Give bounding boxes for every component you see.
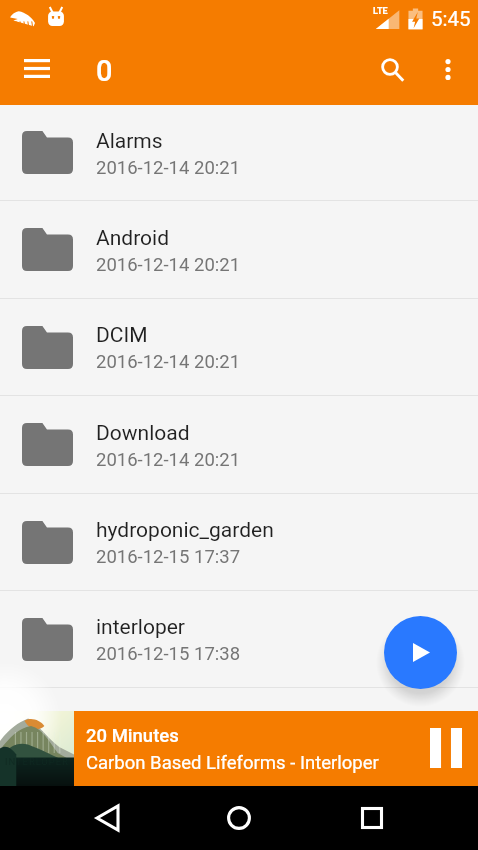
button[interactable]: Pause	[421, 723, 471, 773]
staticText: interloper	[96, 615, 185, 640]
staticText: 2016-12-14 20:21	[96, 157, 241, 179]
button[interactable]: Play	[384, 616, 457, 689]
staticText: 2016-12-15 17:37	[96, 546, 241, 568]
button[interactable]: hydroponic_garden	[0, 494, 478, 590]
staticText: 2016-12-14 20:21	[96, 351, 241, 373]
button[interactable]: Home	[215, 794, 263, 842]
staticText: Alarms	[96, 129, 163, 154]
staticText: 2016-12-15 17:38	[96, 643, 241, 665]
button[interactable]: interloper	[0, 591, 478, 687]
button[interactable]: Download	[0, 396, 478, 493]
staticText: Download	[96, 421, 190, 446]
staticText: 5:45	[431, 7, 471, 31]
button[interactable]: Android	[0, 201, 478, 298]
staticText: LTE	[373, 6, 388, 17]
button[interactable]: DCIM	[0, 299, 478, 395]
staticText: hydroponic_garden	[96, 518, 274, 543]
staticText: DCIM	[96, 323, 148, 348]
button[interactable]: Navigation menu	[13, 44, 61, 92]
staticText: 2016-12-14 20:21	[96, 449, 241, 471]
staticText: Carbon Based Lifeforms - Interloper	[86, 752, 379, 774]
staticText: 0	[96, 54, 113, 88]
button[interactable]: Alarms	[0, 105, 478, 200]
button[interactable]: 20 Minutes	[74, 711, 478, 786]
staticText: 20 Minutes	[86, 725, 179, 747]
button[interactable]: Search	[368, 45, 416, 93]
button[interactable]: Back	[83, 794, 131, 842]
staticText: INTERLOPER	[5, 756, 69, 767]
staticText: 2016-12-14 20:21	[96, 254, 241, 276]
button[interactable]: More options	[424, 45, 472, 93]
button[interactable]: Recent apps	[348, 794, 396, 842]
staticText: Android	[96, 226, 169, 251]
